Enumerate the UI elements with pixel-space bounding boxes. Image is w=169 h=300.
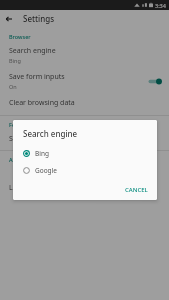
button[interactable]: CANCEL (121, 184, 152, 196)
staticText: Settings (23, 13, 55, 24)
staticText: Bing (35, 149, 49, 158)
staticText: Search engine (23, 128, 78, 139)
staticText: Browser (9, 33, 31, 40)
button[interactable]: Back (0, 10, 17, 27)
staticText: Bing (9, 57, 21, 64)
button[interactable]: Clear browsing data (0, 94, 169, 112)
staticText: About (9, 156, 25, 163)
staticText: CANCEL (125, 186, 148, 194)
staticText: Search engine (9, 46, 56, 56)
button[interactable]: Send feedback (0, 130, 169, 148)
button[interactable]: Search engine (0, 42, 169, 68)
staticText: Clear browsing data (9, 98, 75, 108)
button[interactable]: Google (13, 163, 157, 178)
other: Save form inputs toggle (147, 77, 162, 86)
button[interactable]: Save form inputs (0, 68, 169, 94)
staticText: Save form inputs (9, 72, 65, 82)
button[interactable]: Legal info (0, 179, 169, 197)
staticText: On (9, 83, 17, 90)
staticText: 3:34 (155, 2, 166, 9)
staticText: Send feedback (9, 134, 58, 144)
staticText: Feedback (9, 121, 34, 128)
staticText: Legal info (9, 183, 42, 193)
staticText: Google (35, 166, 57, 175)
button[interactable]: Bing (13, 146, 157, 161)
